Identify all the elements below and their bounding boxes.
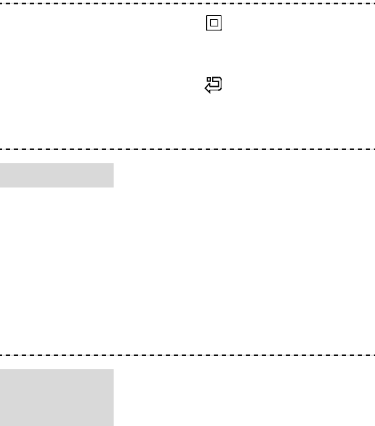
button[interactable]: Reply — [205, 76, 223, 94]
button[interactable]: Stop — [206, 15, 222, 31]
button[interactable]: Headline placeholder — [0, 163, 114, 188]
